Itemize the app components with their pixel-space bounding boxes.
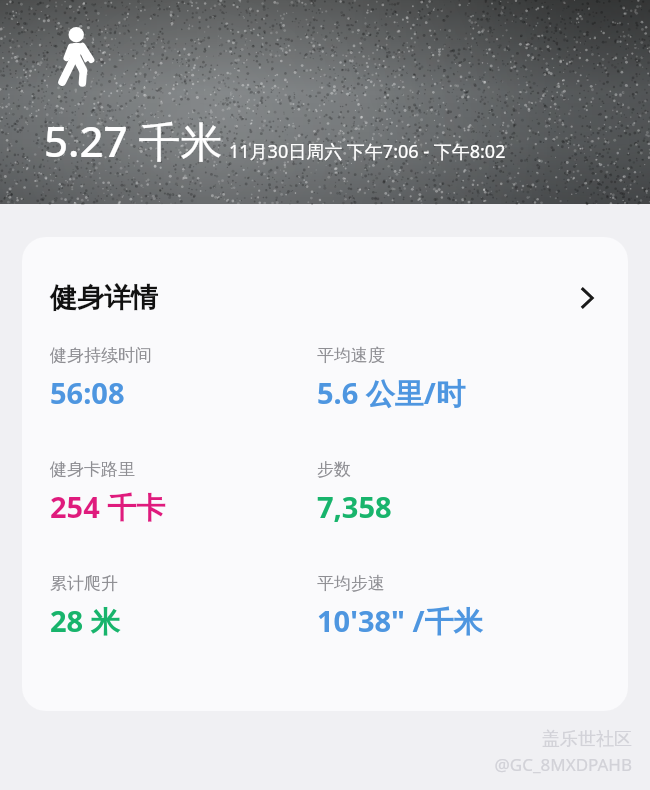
staticText: 5.6 公里/时	[317, 373, 465, 413]
button[interactable]: 健身详情	[22, 237, 628, 345]
staticText: 254 千卡	[50, 487, 166, 527]
staticText: 健身详情	[50, 281, 158, 315]
staticText: 平均速度	[317, 345, 385, 366]
staticText: @GC_8MXDPAHB	[494, 753, 632, 776]
staticText: 56:08	[50, 373, 125, 412]
staticText: 10'38" /千米	[317, 601, 483, 641]
staticText: 11月30日周六 下午7:06 - 下午8:02	[229, 139, 506, 164]
staticText: 健身持续时间	[50, 345, 152, 366]
staticText: 盖乐世社区	[542, 728, 632, 751]
other: Open workout details	[574, 285, 600, 311]
other: Walking workout	[56, 28, 100, 86]
staticText: 7,358	[317, 487, 392, 526]
staticText: 5.27 千米	[44, 112, 223, 169]
staticText: 累计爬升	[50, 573, 118, 594]
staticText: 平均步速	[317, 573, 385, 594]
staticText: 28 米	[50, 601, 120, 641]
staticText: 健身卡路里	[50, 459, 135, 480]
staticText: 步数	[317, 459, 351, 480]
